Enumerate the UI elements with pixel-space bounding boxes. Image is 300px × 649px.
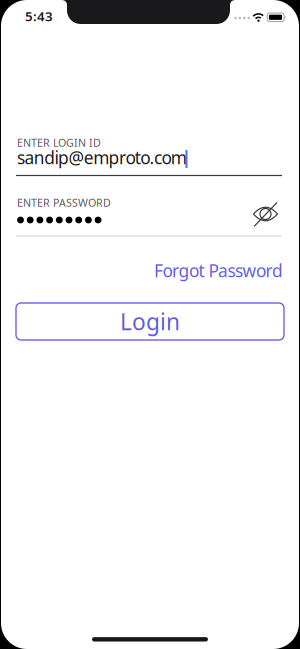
- staticText: ENTER LOGIN ID: [17, 135, 101, 150]
- button[interactable]: Forgot Password: [154, 259, 283, 282]
- button[interactable]: Show password: [252, 202, 278, 227]
- button[interactable]: Login: [16, 303, 284, 340]
- staticText: Login: [120, 306, 180, 336]
- staticText: Forgot Password: [154, 259, 283, 282]
- staticText: ENTER PASSWORD: [17, 195, 111, 210]
- staticText: sandip@emproto.com: [17, 146, 187, 169]
- staticText: 5:43: [25, 7, 53, 25]
